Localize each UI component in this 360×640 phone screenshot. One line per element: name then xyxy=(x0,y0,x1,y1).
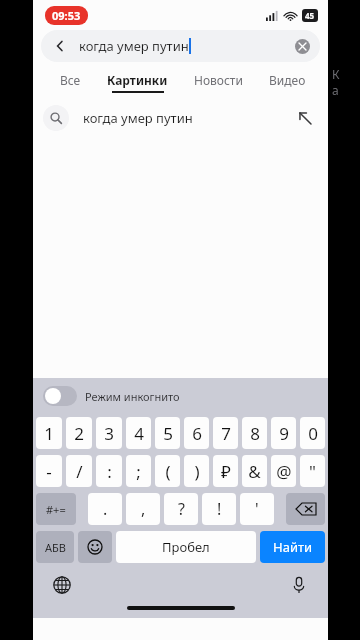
button[interactable]: Back xyxy=(41,30,320,62)
staticText: 09:53 xyxy=(52,8,81,23)
button[interactable]: Voice input xyxy=(286,572,312,598)
button[interactable]: . xyxy=(88,493,122,525)
staticText: Видео xyxy=(269,72,306,88)
button[interactable]: : xyxy=(96,455,122,487)
button[interactable]: 1 xyxy=(36,417,62,449)
staticText: 3 xyxy=(104,422,114,445)
staticText: ₽ xyxy=(221,460,231,483)
button[interactable]: @ xyxy=(271,455,296,487)
button[interactable]: Новости xyxy=(181,72,256,93)
button[interactable]: Все xyxy=(47,72,94,93)
button[interactable]: ₽ xyxy=(213,455,238,487)
button[interactable]: 4 xyxy=(126,417,151,449)
staticText: & xyxy=(248,460,261,483)
staticText: 7 xyxy=(221,422,231,445)
staticText: ; xyxy=(136,460,141,483)
button[interactable]: Clear xyxy=(295,39,310,54)
staticText: когда умер путин xyxy=(79,37,189,55)
button[interactable]: ) xyxy=(184,455,209,487)
staticText: #+= xyxy=(46,502,66,517)
button[interactable]: " xyxy=(300,455,325,487)
button[interactable]: Back xyxy=(51,37,69,55)
button[interactable]: Картинки xyxy=(94,72,181,93)
staticText: 0 xyxy=(308,422,318,445)
staticText: ' xyxy=(255,498,259,520)
staticText: Новости xyxy=(194,72,243,88)
button[interactable]: Emoji xyxy=(78,531,112,563)
staticText: 5 xyxy=(163,422,173,445)
button[interactable]: 2 xyxy=(66,417,92,449)
button[interactable]: - xyxy=(36,455,62,487)
staticText: ( xyxy=(165,460,171,483)
staticText: 1 xyxy=(44,422,54,445)
staticText: - xyxy=(46,460,52,483)
button[interactable]: , xyxy=(126,493,160,525)
button[interactable]: ( xyxy=(155,455,180,487)
staticText: @ xyxy=(276,460,292,483)
staticText: " xyxy=(309,460,316,483)
staticText: АБВ xyxy=(45,540,66,555)
staticText: когда умер путин xyxy=(83,109,193,127)
button[interactable]: 0 xyxy=(300,417,325,449)
staticText: ) xyxy=(194,460,200,483)
staticText: ! xyxy=(217,498,222,520)
staticText: ? xyxy=(178,498,185,520)
staticText: 8 xyxy=(250,422,260,445)
button[interactable]: Найти xyxy=(260,531,325,563)
staticText: 6 xyxy=(192,422,202,445)
button[interactable]: Видео xyxy=(256,72,319,93)
staticText: / xyxy=(76,460,83,483)
staticText: Найти xyxy=(273,538,313,556)
staticText: : xyxy=(107,460,112,483)
staticText: Картинки xyxy=(107,72,168,88)
button[interactable]: 8 xyxy=(242,417,267,449)
staticText: . xyxy=(103,498,108,520)
button[interactable]: & xyxy=(242,455,267,487)
button[interactable]: 3 xyxy=(96,417,122,449)
button[interactable]: ; xyxy=(126,455,151,487)
button[interactable]: 5 xyxy=(155,417,180,449)
staticText: 45 xyxy=(305,10,315,21)
button[interactable]: / xyxy=(66,455,92,487)
button[interactable]: ! xyxy=(202,493,236,525)
button[interactable]: Insert suggestion xyxy=(296,109,314,127)
button[interactable]: Incognito mode toggle xyxy=(43,386,77,406)
button[interactable]: 6 xyxy=(184,417,209,449)
staticText: 4 xyxy=(134,422,144,445)
button[interactable]: 7 xyxy=(213,417,238,449)
button[interactable]: ' xyxy=(240,493,274,525)
staticText: 9 xyxy=(279,422,289,445)
button[interactable]: 9 xyxy=(271,417,296,449)
button[interactable]: Change keyboard language xyxy=(49,572,75,598)
staticText: Пробел xyxy=(162,538,210,556)
button[interactable]: Пробел xyxy=(116,531,256,563)
button[interactable]: #+= xyxy=(36,493,76,525)
button[interactable]: Backspace xyxy=(286,493,325,525)
button[interactable]: когда умер путин xyxy=(33,98,328,138)
staticText: 2 xyxy=(74,422,84,445)
staticText: , xyxy=(141,498,146,520)
staticText: Режим инкогнито xyxy=(85,389,180,404)
button[interactable]: ? xyxy=(164,493,198,525)
staticText: Все xyxy=(60,72,81,88)
button[interactable]: АБВ xyxy=(36,531,74,563)
